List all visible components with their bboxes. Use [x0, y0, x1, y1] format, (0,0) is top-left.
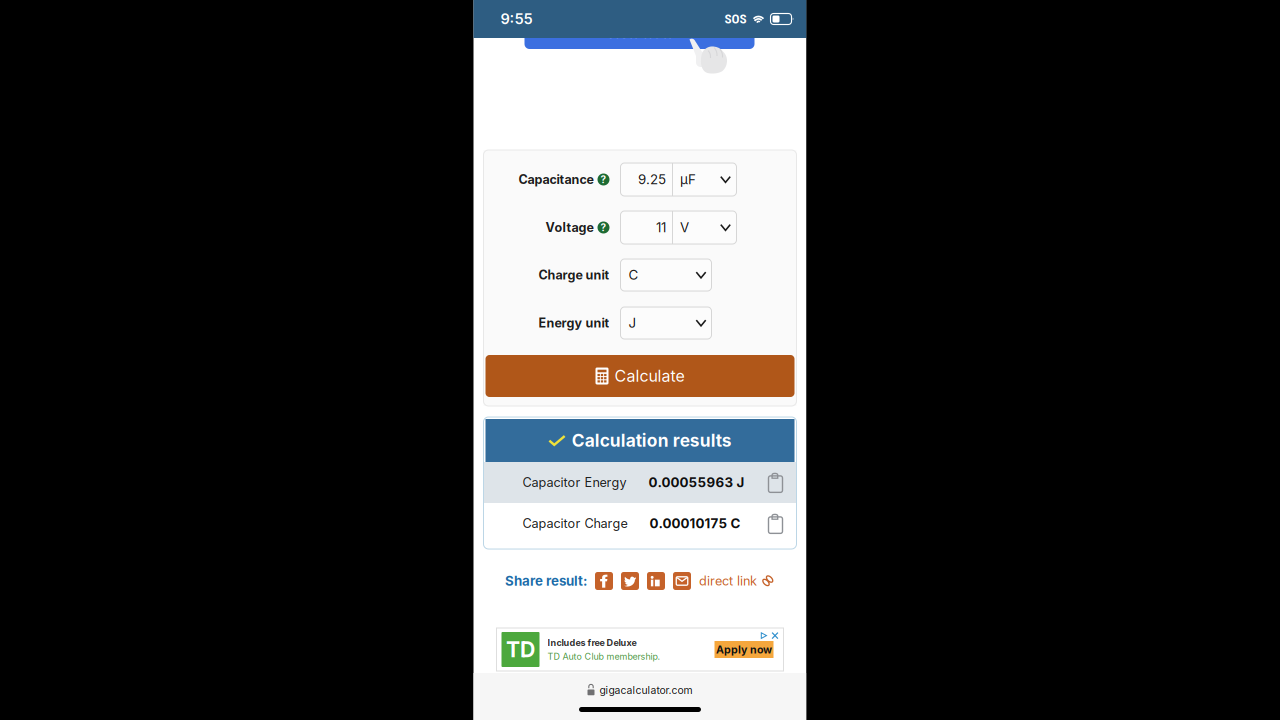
staticText: SOS: [724, 11, 746, 27]
button[interactable]: 11 V: [620, 211, 736, 244]
staticText: 0.00055963 J: [648, 474, 744, 490]
button[interactable]: Apply now: [714, 641, 773, 658]
staticText: C: [628, 267, 638, 283]
button[interactable]: View now: [524, 17, 754, 49]
staticText: Voltage: [545, 220, 593, 235]
staticText: Energy unit: [538, 315, 609, 331]
staticText: Capacitor Energy: [522, 475, 626, 490]
button[interactable]: Select C: [620, 259, 711, 291]
staticText: V: [680, 219, 689, 235]
staticText: ?: [600, 221, 606, 234]
button[interactable]: Share on LinkedIn: [647, 572, 665, 590]
button[interactable]: Share on Twitter: [621, 572, 639, 590]
staticText: Charge unit: [538, 267, 609, 283]
staticText: View now: [605, 24, 673, 42]
staticText: Includes free Deluxe: [547, 637, 636, 648]
staticText: TD: [506, 637, 535, 662]
staticText: Share result:: [505, 573, 587, 589]
staticText: Calculate: [614, 366, 684, 386]
staticText: direct link: [699, 573, 757, 589]
staticText: 9.25: [638, 171, 666, 187]
button[interactable]: Copy Capacitor Energy: [762, 467, 788, 498]
staticText: 0.00010175 C: [649, 515, 740, 531]
staticText: ?: [600, 173, 606, 186]
button[interactable]: Select J: [620, 307, 711, 339]
staticText: µF: [680, 171, 696, 187]
staticText: Apply now: [716, 643, 772, 656]
staticText: 11: [656, 219, 666, 235]
staticText: Capacitor Charge: [522, 516, 627, 531]
staticText: Capacitance: [518, 172, 593, 187]
staticText: gigacalculator.com: [599, 684, 692, 697]
button[interactable]: Share on Facebook: [595, 572, 613, 590]
staticText: J: [628, 315, 636, 331]
button[interactable]: 9.25 µF: [620, 163, 736, 196]
staticText: 9:55: [500, 10, 532, 28]
button[interactable]: Calculate: [485, 355, 794, 397]
staticText: TD Auto Club membership.: [547, 651, 660, 662]
button[interactable]: Copy Capacitor Charge: [762, 508, 788, 539]
button[interactable]: direct link: [699, 573, 775, 589]
staticText: Calculation results: [572, 430, 732, 451]
button[interactable]: Share by email: [673, 572, 691, 590]
